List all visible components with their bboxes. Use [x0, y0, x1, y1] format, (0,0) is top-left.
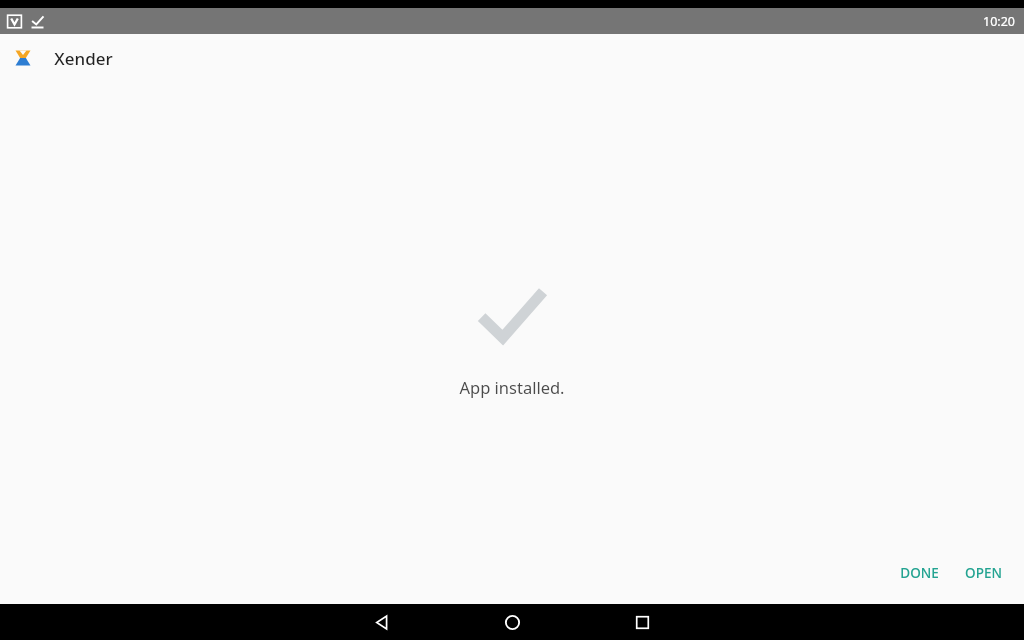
button[interactable]: Back — [317, 604, 447, 640]
staticText: Xender — [54, 47, 113, 70]
staticText: 10:20 — [983, 13, 1015, 30]
staticText: DONE — [900, 564, 939, 582]
button[interactable]: DONE — [892, 556, 947, 590]
button[interactable]: Recent apps — [577, 604, 707, 640]
button[interactable]: Home — [447, 604, 577, 640]
button[interactable]: OPEN — [957, 556, 1010, 590]
staticText: App installed. — [459, 376, 565, 398]
staticText: OPEN — [965, 564, 1002, 582]
